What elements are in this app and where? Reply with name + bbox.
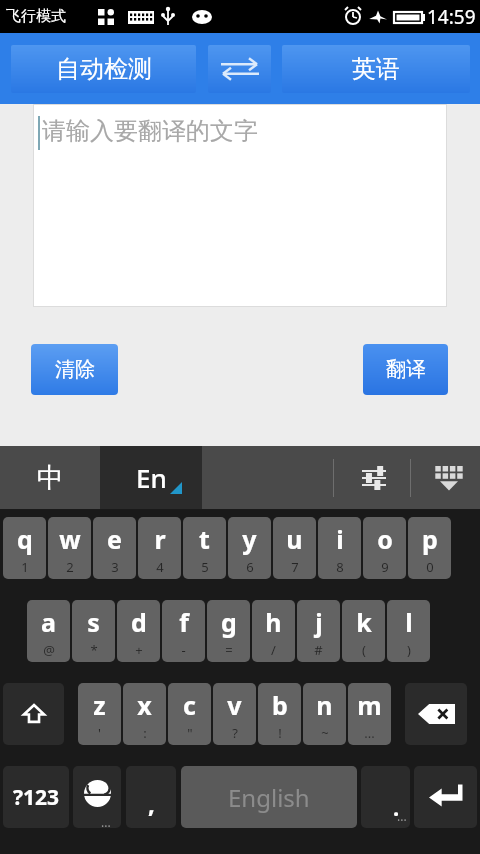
staticText: ...	[364, 724, 375, 742]
staticText: #	[314, 641, 323, 659]
button[interactable]: p	[408, 517, 451, 579]
staticText: 英语	[352, 54, 400, 84]
staticText: ...	[101, 814, 111, 828]
button[interactable]: o	[363, 517, 406, 579]
staticText: q	[17, 522, 33, 556]
button[interactable]: w	[48, 517, 91, 579]
button[interactable]: n	[303, 683, 346, 745]
staticText: -	[181, 641, 186, 659]
staticText: x	[137, 688, 152, 722]
button[interactable]: q	[3, 517, 46, 579]
staticText: r	[154, 522, 166, 556]
staticText: (	[362, 641, 366, 659]
button[interactable]: z	[78, 683, 121, 745]
staticText: 清除	[55, 357, 95, 382]
button[interactable]: .	[361, 766, 410, 828]
staticText: h	[265, 605, 282, 639]
staticText: 8	[336, 558, 344, 576]
staticText: 7	[291, 558, 299, 576]
button[interactable]: s	[72, 600, 115, 662]
button[interactable]: Backspace	[405, 683, 467, 745]
staticText: ?	[232, 724, 238, 742]
staticText: k	[356, 605, 372, 639]
button[interactable]: 翻译	[363, 344, 448, 395]
staticText: .	[393, 792, 400, 822]
staticText: u	[286, 522, 303, 556]
button[interactable]: k	[342, 600, 385, 662]
staticText: 0	[426, 558, 434, 576]
staticText: c	[183, 688, 196, 722]
staticText: j	[315, 605, 323, 639]
button[interactable]: i	[318, 517, 361, 579]
staticText: :	[143, 724, 147, 742]
button[interactable]: Shift	[3, 683, 64, 745]
staticText: 2	[66, 558, 74, 576]
button[interactable]: 自动检测	[11, 45, 196, 93]
staticText: 4	[156, 558, 164, 576]
button[interactable]: ,	[126, 766, 176, 828]
staticText: p	[422, 522, 438, 556]
staticText: a	[41, 605, 56, 639]
staticText: d	[131, 605, 147, 639]
staticText: t	[199, 522, 210, 556]
staticText: 6	[246, 558, 254, 576]
button[interactable]: b	[258, 683, 301, 745]
button[interactable]: 英语	[282, 45, 470, 93]
button[interactable]: l	[387, 600, 430, 662]
button[interactable]: e	[93, 517, 136, 579]
staticText: 请输入要翻译的文字	[42, 116, 258, 146]
button[interactable]: En	[100, 446, 202, 509]
button[interactable]: x	[123, 683, 166, 745]
staticText: 1	[21, 558, 29, 576]
staticText: g	[221, 605, 237, 639]
button[interactable]: Hide keyboard	[420, 446, 478, 509]
button[interactable]: 请输入要翻译的文字	[34, 105, 446, 306]
button[interactable]: Input settings	[346, 446, 402, 509]
staticText: ,	[148, 787, 155, 820]
button[interactable]: ?123	[3, 766, 69, 828]
staticText: y	[242, 522, 257, 556]
staticText: l	[405, 605, 413, 639]
staticText: z	[93, 688, 106, 722]
staticText: b	[272, 688, 288, 722]
button[interactable]: 中	[0, 446, 100, 509]
staticText: En	[136, 460, 167, 495]
button[interactable]: f	[162, 600, 205, 662]
staticText: 自动检测	[56, 54, 152, 84]
button[interactable]: g	[207, 600, 250, 662]
button[interactable]: h	[252, 600, 295, 662]
staticText: !	[278, 724, 282, 742]
staticText: o	[377, 522, 393, 556]
button[interactable]: Swap languages	[208, 45, 271, 93]
button[interactable]: Change input language	[73, 766, 121, 828]
staticText: 9	[381, 558, 389, 576]
staticText: ...	[397, 808, 407, 824]
button[interactable]: c	[168, 683, 211, 745]
staticText: w	[59, 522, 81, 556]
button[interactable]: m	[348, 683, 391, 745]
button[interactable]: a	[27, 600, 70, 662]
staticText: /	[271, 641, 276, 659]
button[interactable]: u	[273, 517, 316, 579]
button[interactable]: Enter	[414, 766, 477, 828]
button[interactable]: r	[138, 517, 181, 579]
staticText: @	[43, 641, 55, 659]
staticText: m	[357, 688, 382, 722]
staticText: 3	[111, 558, 119, 576]
staticText: English	[228, 781, 310, 814]
button[interactable]: 清除	[31, 344, 118, 395]
staticText: 14:59	[427, 4, 476, 30]
staticText: '	[98, 724, 101, 742]
staticText: 翻译	[386, 357, 426, 382]
staticText: )	[407, 641, 411, 659]
button[interactable]: v	[213, 683, 256, 745]
button[interactable]: t	[183, 517, 226, 579]
button[interactable]: English	[181, 766, 357, 828]
staticText: 5	[201, 558, 209, 576]
staticText: v	[227, 688, 242, 722]
staticText: s	[87, 605, 100, 639]
button[interactable]: j	[297, 600, 340, 662]
staticText: i	[336, 522, 344, 556]
button[interactable]: y	[228, 517, 271, 579]
button[interactable]: d	[117, 600, 160, 662]
